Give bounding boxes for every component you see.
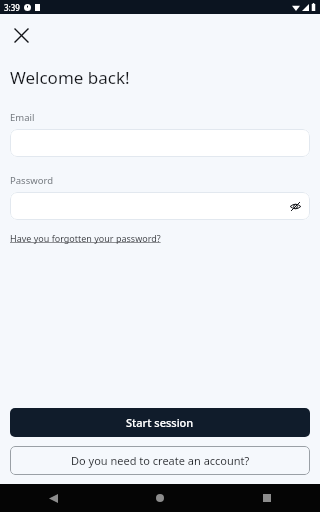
button[interactable]: Recent apps: [213, 484, 320, 512]
button[interactable]: Close: [6, 20, 36, 50]
staticText: Do you need to create an account?: [71, 453, 250, 468]
staticText: Email: [10, 111, 35, 124]
staticText: Start session: [126, 415, 194, 430]
staticText: Have you forgotten your password?: [10, 232, 161, 244]
staticText: 3:39: [4, 2, 20, 13]
button[interactable]: [10, 129, 310, 157]
staticText: Welcome back!: [10, 66, 130, 89]
button[interactable]: Back: [0, 484, 106, 512]
button[interactable]: Show password: [10, 192, 310, 220]
button[interactable]: Show password: [285, 196, 305, 216]
button[interactable]: Do you need to create an account?: [10, 446, 310, 475]
button[interactable]: Have you forgotten your password?: [10, 232, 161, 244]
button[interactable]: Home: [106, 484, 213, 512]
button[interactable]: Start session: [10, 408, 310, 437]
staticText: Password: [10, 174, 53, 187]
